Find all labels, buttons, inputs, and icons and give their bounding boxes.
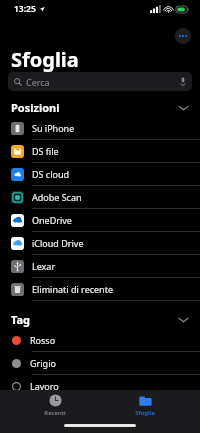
staticText: OneDrive bbox=[32, 214, 72, 226]
button[interactable]: DS cloud bbox=[0, 163, 200, 186]
staticText: Recenti bbox=[44, 409, 66, 417]
button[interactable]: Lavoro bbox=[0, 375, 200, 398]
staticText: Sfoglia bbox=[135, 409, 155, 417]
staticText: Eliminati di recente bbox=[32, 283, 114, 295]
button[interactable]: Recenti bbox=[20, 390, 90, 420]
button[interactable]: iCloud Drive bbox=[0, 232, 200, 255]
button[interactable]: Tag bbox=[0, 310, 200, 329]
staticText: Lexar bbox=[32, 260, 56, 272]
staticText: Grigio bbox=[30, 357, 56, 369]
button[interactable]: Sfoglia bbox=[110, 390, 180, 420]
staticText: Sfoglia bbox=[11, 46, 79, 72]
button[interactable]: More options bbox=[175, 28, 191, 44]
staticText: Home bbox=[30, 403, 56, 415]
button[interactable]: Rosso bbox=[0, 329, 200, 352]
staticText: Rosso bbox=[30, 334, 56, 346]
staticText: Su iPhone bbox=[32, 122, 75, 134]
button[interactable]: Home bbox=[0, 398, 200, 421]
button[interactable]: Lexar bbox=[0, 255, 200, 278]
button[interactable]: Adobe Scan bbox=[0, 186, 200, 209]
staticText: Lavoro bbox=[30, 380, 59, 392]
button[interactable]: Posizioni bbox=[0, 98, 200, 117]
staticText: Posizioni bbox=[11, 100, 60, 115]
staticText: Tag bbox=[11, 312, 31, 327]
staticText: 13:25 bbox=[14, 3, 36, 15]
button[interactable]: Cerca bbox=[8, 72, 192, 91]
button[interactable]: OneDrive bbox=[0, 209, 200, 232]
staticText: DS file bbox=[32, 145, 59, 157]
staticText: Cerca bbox=[26, 76, 50, 88]
staticText: Adobe Scan bbox=[32, 191, 82, 203]
button[interactable]: Grigio bbox=[0, 352, 200, 375]
staticText: iCloud Drive bbox=[32, 237, 84, 249]
button[interactable]: Eliminati di recente bbox=[0, 278, 200, 301]
button[interactable]: Su iPhone bbox=[0, 117, 200, 140]
staticText: DS cloud bbox=[32, 168, 70, 180]
button[interactable]: DS file bbox=[0, 140, 200, 163]
